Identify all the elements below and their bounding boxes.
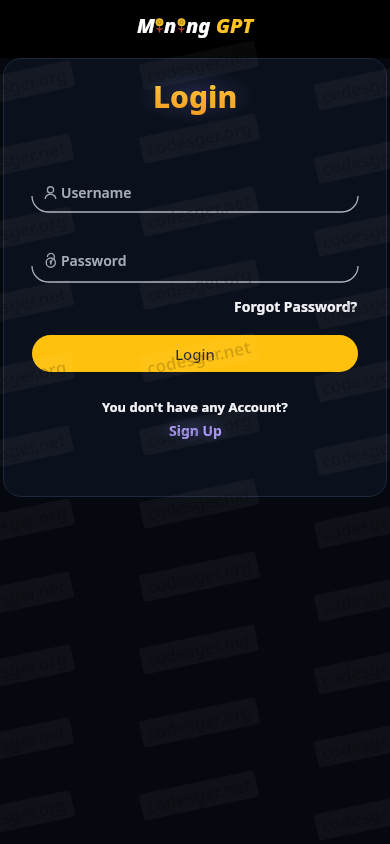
staticText: n <box>164 12 177 39</box>
staticText: codesger.org <box>145 116 254 161</box>
staticText: Login <box>153 76 238 117</box>
staticText: codesger.net <box>145 189 253 234</box>
staticText: codesger.net <box>145 43 253 88</box>
staticText: codesger.org <box>145 262 254 307</box>
staticText: codesger.net <box>320 209 390 254</box>
staticText: codesger.net <box>0 428 68 473</box>
staticText: codesger.net <box>0 720 68 765</box>
staticText: codesger.net <box>320 647 390 692</box>
staticText: codesger.org <box>0 63 69 108</box>
staticText: codesger.net <box>320 355 390 400</box>
staticText: codesger.org <box>320 574 390 619</box>
staticText: codesger.net <box>145 773 253 818</box>
staticText: codesger.net <box>145 627 253 672</box>
staticText: codesger.net <box>0 282 68 327</box>
staticText: Username <box>61 183 132 202</box>
button[interactable]: Username <box>44 178 387 206</box>
staticText: codesger.org <box>0 355 69 400</box>
staticText: GPT <box>216 12 254 39</box>
staticText: codesger.org <box>0 793 69 838</box>
button[interactable]: M <box>137 12 254 39</box>
staticText: ng <box>186 12 216 39</box>
staticText: codesger.net <box>0 136 68 181</box>
staticText: codesger.net <box>320 63 390 108</box>
staticText: Password <box>61 251 127 270</box>
staticText: You don't have any Account? <box>102 398 288 416</box>
staticText: codesger.org <box>320 136 390 181</box>
staticText: codesger.org <box>145 554 254 599</box>
button[interactable]: Sign Up <box>169 421 222 440</box>
button[interactable]: Login <box>32 335 358 372</box>
staticText: codesger.net <box>145 335 253 380</box>
staticText: codesger.org <box>145 408 254 453</box>
staticText: codesger.net <box>0 574 68 619</box>
staticText: codesger.net <box>320 793 390 838</box>
button[interactable]: Password <box>44 246 387 274</box>
staticText: codesger.org <box>145 700 254 745</box>
staticText: codesger.net <box>320 501 390 546</box>
staticText: codesger.org <box>0 501 69 546</box>
button[interactable]: Forgot Password? <box>234 297 358 316</box>
staticText: codesger.org <box>320 282 390 327</box>
staticText: codesger.org <box>0 647 69 692</box>
staticText: Login <box>175 344 215 364</box>
staticText: codesger.net <box>145 481 253 526</box>
staticText: M <box>137 12 155 39</box>
staticText: codesger.org <box>0 209 69 254</box>
staticText: codesger.org <box>320 720 390 765</box>
staticText: codesger.org <box>320 428 390 473</box>
